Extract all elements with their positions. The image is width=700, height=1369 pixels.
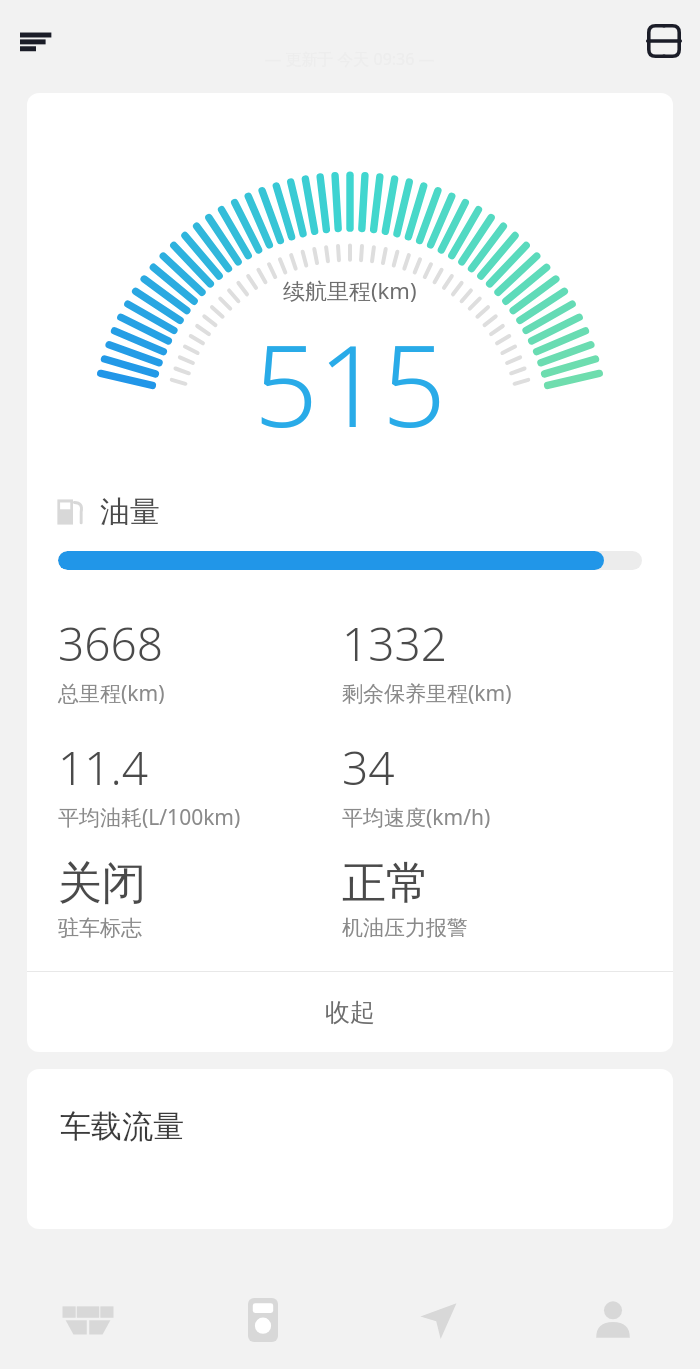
staticText: 车载流量 — [60, 1107, 184, 1146]
staticText: 平均速度(km/h) — [342, 803, 491, 832]
button[interactable]: Scan — [636, 13, 692, 69]
staticText: 34 — [342, 736, 395, 799]
button[interactable]: Vehicle — [0, 1271, 175, 1369]
staticText: 515 — [254, 307, 446, 460]
button[interactable]: Navigation — [350, 1271, 525, 1369]
staticText: 11.4 — [58, 736, 149, 799]
staticText: 关闭 — [58, 856, 146, 911]
staticText: 3668 — [58, 612, 164, 675]
staticText: 收起 — [325, 997, 375, 1028]
staticText: 驻车标志 — [58, 915, 142, 941]
button[interactable]: Profile — [525, 1271, 700, 1369]
staticText: 1332 — [342, 612, 448, 675]
staticText: 剩余保养里程(km) — [342, 679, 512, 708]
button[interactable]: Remote — [175, 1271, 350, 1369]
button[interactable]: Menu — [8, 13, 64, 69]
staticText: 续航里程(km) — [283, 275, 417, 305]
staticText: 油量 — [100, 493, 160, 531]
button[interactable]: 收起 — [27, 972, 673, 1052]
staticText: 总里程(km) — [58, 679, 165, 708]
staticText: 平均油耗(L/100km) — [58, 803, 241, 832]
staticText: 正常 — [342, 856, 430, 911]
button[interactable]: 车载流量 — [27, 1069, 673, 1229]
staticText: 机油压力报警 — [342, 915, 468, 941]
